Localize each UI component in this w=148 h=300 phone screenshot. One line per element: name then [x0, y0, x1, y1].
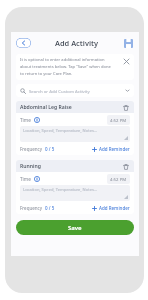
- staticText: Location, Speed, Temperature, Notes...: [23, 128, 98, 134]
- staticText: Add Reminder: [99, 205, 130, 211]
- button[interactable]: Location, Speed, Temperature, Notes...: [20, 185, 130, 201]
- staticText: Time: [20, 117, 31, 123]
- staticText: It is optional to enter additional infor…: [20, 57, 105, 63]
- button[interactable]: Save activity: [122, 37, 134, 49]
- button[interactable]: Time information: [33, 116, 40, 123]
- button[interactable]: Add Reminder: [92, 146, 130, 152]
- button[interactable]: Delete Running: [121, 162, 130, 171]
- staticText: Time: [20, 176, 31, 182]
- staticText: about treatments below. Tap "Save" when …: [20, 64, 111, 70]
- staticText: Add Activity: [55, 38, 99, 48]
- staticText: Search or Add Custom Activity: [29, 88, 90, 94]
- staticText: Abdominal Leg Raise: [20, 104, 72, 111]
- button[interactable]: 4:52 PM: [107, 115, 130, 125]
- staticText: Frequency: [20, 205, 42, 211]
- staticText: 0 / 5: [45, 205, 55, 211]
- staticText: 0 / 5: [45, 146, 55, 152]
- staticText: Frequency: [20, 146, 42, 152]
- staticText: Save: [68, 224, 82, 232]
- button[interactable]: Back: [16, 38, 31, 48]
- staticText: 4:52 PM: [110, 176, 127, 182]
- button[interactable]: Dismiss: [122, 57, 130, 65]
- button[interactable]: Save: [16, 220, 134, 235]
- staticText: Running: [20, 163, 41, 170]
- staticText: to return to your Care Plan.: [20, 71, 73, 77]
- staticText: 4:52 PM: [110, 117, 127, 123]
- button[interactable]: Delete Abdominal Leg Raise: [121, 103, 130, 112]
- button[interactable]: 4:52 PM: [107, 174, 130, 184]
- staticText: Location, Speed, Temperature, Notes...: [23, 187, 98, 193]
- button[interactable]: Location, Speed, Temperature, Notes...: [20, 126, 130, 142]
- staticText: Add Reminder: [99, 146, 130, 152]
- button[interactable]: Time information: [33, 175, 40, 182]
- button[interactable]: Search or Add Custom Activity: [16, 84, 134, 97]
- button[interactable]: Add Reminder: [92, 205, 130, 211]
